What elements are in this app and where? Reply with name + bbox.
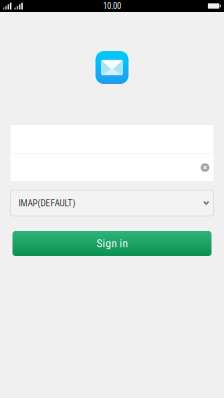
button[interactable]: IMAP(DEFAULT): [10, 190, 213, 216]
staticText: Sign in: [96, 237, 127, 250]
button[interactable]: Sign in: [12, 231, 211, 256]
staticText: IMAP(DEFAULT): [18, 197, 75, 208]
button[interactable]: Clear text: [197, 159, 213, 175]
staticText: 10.00: [103, 1, 121, 11]
